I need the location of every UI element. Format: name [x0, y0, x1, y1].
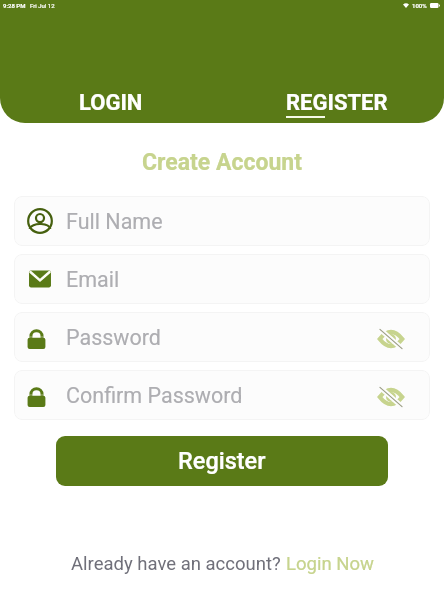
staticText: Password: [66, 325, 161, 350]
button[interactable]: Login Now: [286, 551, 374, 577]
button[interactable]: LOGIN: [63, 86, 159, 120]
button[interactable]: Toggle password visibility: [374, 320, 408, 354]
staticText: LOGIN: [79, 90, 143, 116]
staticText: Create Account: [0, 149, 444, 176]
staticText: Fri Jul 12: [30, 2, 55, 9]
button[interactable]: Full Name: [14, 196, 430, 246]
staticText: Full Name: [66, 209, 163, 234]
staticText: Confirm Password: [66, 383, 243, 408]
staticText: 9:28 PM: [3, 2, 26, 9]
staticText: Already have an account?: [71, 553, 286, 575]
button[interactable]: REGISTER: [270, 86, 404, 118]
button[interactable]: Password: [14, 312, 430, 362]
staticText: Login Now: [286, 553, 374, 575]
button[interactable]: Register: [56, 436, 388, 486]
staticText: Email: [66, 267, 120, 292]
button[interactable]: Confirm Password: [14, 370, 430, 420]
staticText: REGISTER: [286, 90, 388, 116]
staticText: 100%: [412, 2, 427, 9]
button[interactable]: Toggle password visibility: [374, 378, 408, 412]
staticText: Register: [178, 447, 266, 475]
button[interactable]: Email: [14, 254, 430, 304]
